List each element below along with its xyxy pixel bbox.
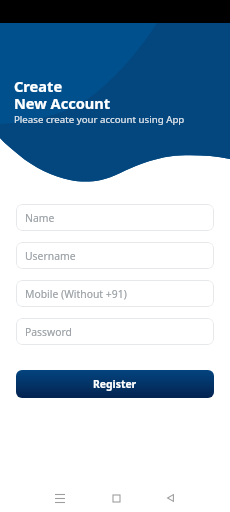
staticText: Create (14, 76, 63, 96)
staticText: Mobile (Without +91) (25, 287, 127, 301)
button[interactable]: Home (101, 483, 131, 512)
staticText: Register (93, 377, 137, 391)
button[interactable]: Username (16, 242, 214, 269)
button[interactable]: Register (16, 370, 214, 398)
button[interactable]: Back (155, 483, 185, 512)
staticText: Username (25, 249, 76, 263)
staticText: Password (25, 325, 72, 339)
button[interactable]: Name (16, 204, 214, 231)
staticText: Please create your account using App (14, 113, 185, 126)
button[interactable]: Password (16, 318, 214, 345)
button[interactable]: Mobile (Without +91) (16, 280, 214, 307)
button[interactable]: Recent apps (45, 483, 75, 512)
staticText: Name (25, 211, 55, 225)
staticText: New Account (14, 93, 111, 113)
